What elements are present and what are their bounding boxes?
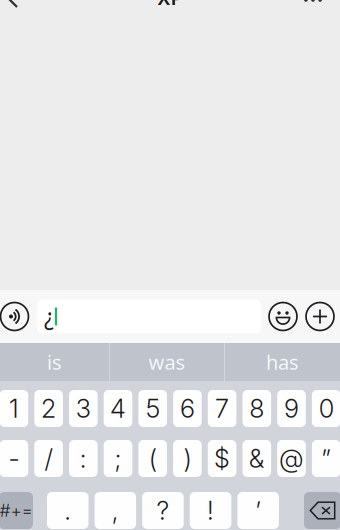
- button[interactable]: More: [304, 0, 332, 7]
- staticText: XP: [157, 0, 182, 11]
- staticText: !: [207, 495, 214, 526]
- staticText: 5: [146, 393, 160, 424]
- staticText: ;: [114, 443, 121, 474]
- button[interactable]: has: [225, 343, 340, 381]
- staticText: (: [149, 443, 157, 474]
- button[interactable]: ): [173, 440, 202, 477]
- staticText: -: [8, 443, 19, 474]
- staticText: &: [249, 443, 265, 474]
- button[interactable]: !: [190, 492, 231, 529]
- button[interactable]: $: [208, 440, 236, 477]
- button[interactable]: is: [0, 343, 109, 381]
- button[interactable]: Back: [2, 0, 28, 9]
- staticText: 6: [180, 393, 195, 424]
- staticText: .: [64, 495, 71, 526]
- button[interactable]: Delete: [304, 492, 340, 529]
- button[interactable]: 6: [173, 390, 202, 427]
- staticText: ¿: [44, 301, 54, 331]
- staticText: ”: [321, 443, 331, 474]
- button[interactable]: ’: [237, 492, 279, 529]
- staticText: was: [148, 349, 185, 375]
- staticText: 7: [215, 393, 229, 424]
- button[interactable]: 2: [34, 390, 63, 427]
- staticText: ’: [255, 495, 261, 526]
- staticText: #+=: [0, 500, 32, 521]
- staticText: ?: [156, 495, 169, 526]
- staticText: @: [279, 443, 304, 474]
- button[interactable]: #+=: [0, 492, 33, 529]
- staticText: :: [80, 443, 87, 474]
- button[interactable]: Emoji: [269, 302, 297, 330]
- staticText: $: [214, 443, 230, 474]
- button[interactable]: 9: [277, 390, 306, 427]
- button[interactable]: 3: [69, 390, 98, 427]
- button[interactable]: ,: [95, 492, 136, 529]
- button[interactable]: ?: [142, 492, 184, 529]
- button[interactable]: &: [242, 440, 271, 477]
- button[interactable]: 5: [138, 390, 167, 427]
- staticText: 3: [76, 393, 91, 424]
- staticText: is: [47, 349, 62, 375]
- button[interactable]: ”: [312, 440, 340, 477]
- button[interactable]: :: [69, 440, 98, 477]
- button[interactable]: (: [138, 440, 167, 477]
- staticText: 4: [110, 393, 126, 424]
- staticText: 1: [9, 393, 19, 424]
- staticText: 2: [41, 393, 56, 424]
- staticText: 0: [319, 393, 334, 424]
- button[interactable]: .: [47, 492, 88, 529]
- button[interactable]: 4: [104, 390, 132, 427]
- button[interactable]: ;: [104, 440, 132, 477]
- button[interactable]: More: [306, 302, 334, 330]
- button[interactable]: 8: [242, 390, 271, 427]
- staticText: 9: [284, 393, 299, 424]
- button[interactable]: ¿: [37, 299, 261, 333]
- button[interactable]: Hold to talk: [0, 302, 28, 330]
- staticText: ): [183, 443, 191, 474]
- button[interactable]: @: [277, 440, 306, 477]
- button[interactable]: was: [110, 343, 224, 381]
- button[interactable]: 0: [312, 390, 340, 427]
- button[interactable]: 7: [208, 390, 236, 427]
- staticText: has: [266, 349, 299, 375]
- button[interactable]: XP: [135, 0, 205, 2]
- staticText: /: [45, 443, 53, 474]
- button[interactable]: -: [0, 440, 28, 477]
- button[interactable]: /: [34, 440, 63, 477]
- staticText: 8: [249, 393, 264, 424]
- staticText: ,: [112, 495, 119, 526]
- button[interactable]: 1: [0, 390, 28, 427]
